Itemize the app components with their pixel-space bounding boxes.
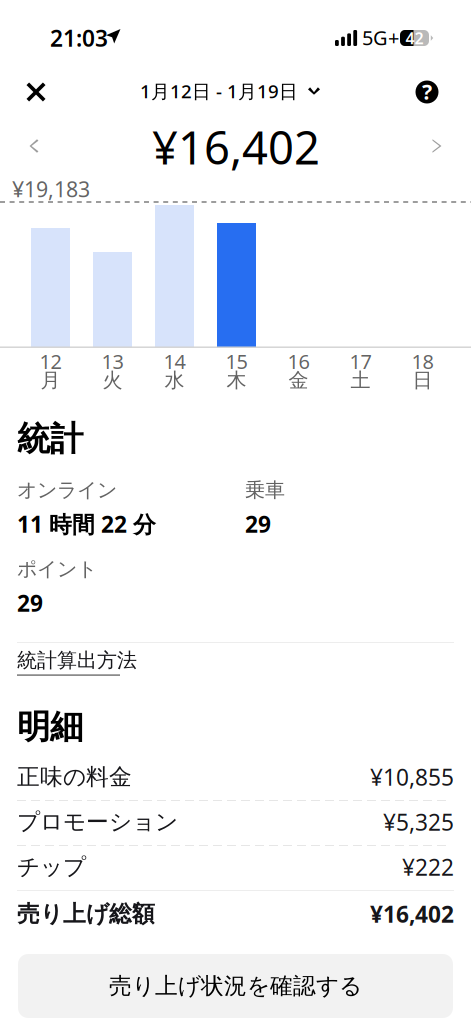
staticText: 木 bbox=[226, 368, 246, 393]
staticText: ポイント bbox=[17, 557, 97, 581]
staticText: ¥222 bbox=[402, 852, 454, 882]
staticText: ? bbox=[422, 77, 432, 106]
staticText: 5G+ bbox=[362, 24, 399, 51]
staticText: ¥19,183 bbox=[12, 175, 90, 203]
button[interactable]: 売り上げ状況を確認する bbox=[18, 954, 453, 1018]
staticText: 売り上げ総額 bbox=[17, 900, 155, 928]
staticText: 11 時間 22 分 bbox=[17, 509, 156, 539]
staticText: 29 bbox=[245, 509, 271, 539]
staticText: 統計算出方法 bbox=[17, 648, 137, 673]
staticText: 明細 bbox=[17, 706, 83, 747]
staticText: プロモーション bbox=[17, 808, 178, 836]
staticText: 16 bbox=[287, 348, 309, 375]
staticText: ¥5,325 bbox=[383, 807, 454, 837]
staticText: 水 bbox=[164, 368, 184, 393]
staticText: 13 bbox=[101, 348, 123, 375]
staticText: 火 bbox=[102, 368, 122, 393]
staticText: 日 bbox=[412, 368, 432, 393]
staticText: 14 bbox=[163, 348, 185, 375]
staticText: 1月12日 - 1月19日 bbox=[140, 79, 298, 103]
button[interactable]: Next week bbox=[415, 124, 459, 168]
button[interactable]: Close bbox=[14, 70, 58, 114]
staticText: チップ bbox=[17, 853, 86, 881]
staticText: 売り上げ状況を確認する bbox=[109, 972, 362, 1000]
staticText: 18 bbox=[411, 348, 433, 375]
staticText: ¥16,402 bbox=[152, 117, 320, 177]
staticText: 金 bbox=[288, 368, 308, 393]
button[interactable]: Help bbox=[405, 70, 449, 114]
button[interactable]: Previous week bbox=[12, 124, 56, 168]
staticText: 12 bbox=[39, 348, 61, 375]
staticText: 土 bbox=[350, 368, 370, 393]
button[interactable]: 統計算出方法 bbox=[17, 648, 167, 676]
staticText: ¥10,855 bbox=[370, 762, 454, 792]
staticText: 統計 bbox=[17, 418, 83, 459]
staticText: 29 bbox=[17, 588, 43, 618]
staticText: 17 bbox=[349, 348, 371, 375]
staticText: 42 bbox=[405, 27, 423, 49]
staticText: 15 bbox=[225, 348, 247, 375]
staticText: 乗車 bbox=[245, 478, 285, 502]
staticText: 正味の料金 bbox=[17, 763, 132, 791]
staticText: オンライン bbox=[17, 478, 117, 502]
staticText: 月 bbox=[40, 368, 60, 393]
staticText: ¥16,402 bbox=[370, 899, 454, 929]
button[interactable]: 1月12日 - 1月19日 bbox=[120, 69, 340, 113]
staticText: 21:03 bbox=[50, 23, 108, 53]
